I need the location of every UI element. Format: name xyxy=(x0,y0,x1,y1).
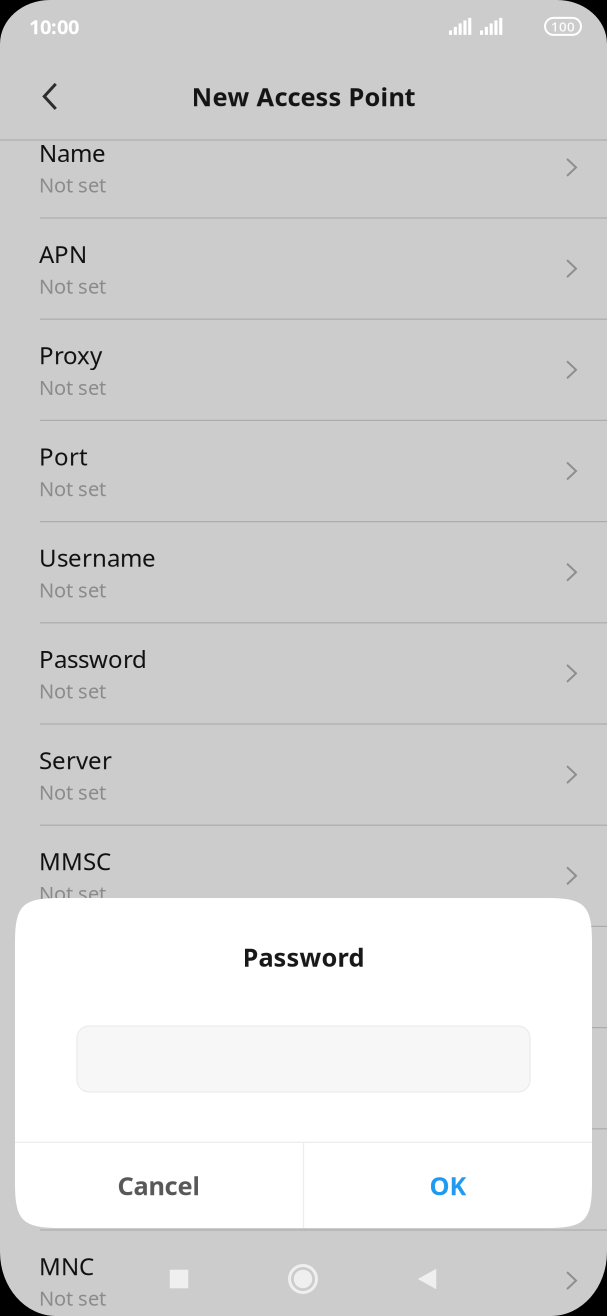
button[interactable]: MMS proxy xyxy=(0,927,607,1028)
button[interactable]: Username xyxy=(0,522,607,623)
button[interactable]: Back xyxy=(365,1235,489,1316)
button[interactable]: MNC xyxy=(0,1231,607,1316)
button[interactable]: Home xyxy=(241,1235,365,1316)
staticText: MNC xyxy=(39,1250,94,1282)
staticText: Proxy xyxy=(39,339,102,371)
button[interactable]: Cancel xyxy=(15,1143,303,1228)
staticText: Not set xyxy=(39,1285,106,1311)
button[interactable]: APN xyxy=(0,219,607,320)
staticText: Not set xyxy=(39,172,106,198)
button[interactable]: MCC xyxy=(0,1129,607,1231)
button[interactable]: Name xyxy=(0,117,607,219)
staticText: Port xyxy=(39,440,88,472)
staticText: Password xyxy=(39,643,147,675)
staticText: 100 xyxy=(551,17,575,35)
staticText: Password xyxy=(242,940,364,974)
button[interactable]: Server xyxy=(0,725,607,826)
staticText: Username xyxy=(39,541,156,573)
button[interactable]: MMSC xyxy=(0,826,607,927)
staticText: MMS port xyxy=(39,1047,151,1079)
staticText: Not set xyxy=(39,880,106,907)
staticText: Not set xyxy=(39,678,106,704)
button[interactable]: Proxy xyxy=(0,320,607,421)
staticText: APN xyxy=(39,238,87,270)
staticText: MMSC xyxy=(39,845,111,877)
staticText: Not set xyxy=(39,273,106,299)
staticText: Name xyxy=(39,137,106,169)
staticText: Not set xyxy=(39,374,106,401)
staticText: Not set xyxy=(39,1082,106,1109)
staticText: Not set xyxy=(39,475,106,502)
staticText: 10:00 xyxy=(29,13,79,40)
staticText: New Access Point xyxy=(191,80,415,113)
staticText: Server xyxy=(39,744,112,776)
button[interactable]: Recents xyxy=(117,1235,241,1316)
button[interactable]: MMS port xyxy=(0,1028,607,1129)
button[interactable]: Port xyxy=(0,421,607,522)
button[interactable]: Back xyxy=(18,64,82,128)
button[interactable]: Password xyxy=(0,623,607,725)
staticText: OK xyxy=(430,1169,467,1202)
button[interactable]: OK xyxy=(304,1143,592,1228)
staticText: Cancel xyxy=(117,1169,200,1202)
staticText: Not set xyxy=(39,779,106,805)
staticText: Not set xyxy=(39,576,106,603)
